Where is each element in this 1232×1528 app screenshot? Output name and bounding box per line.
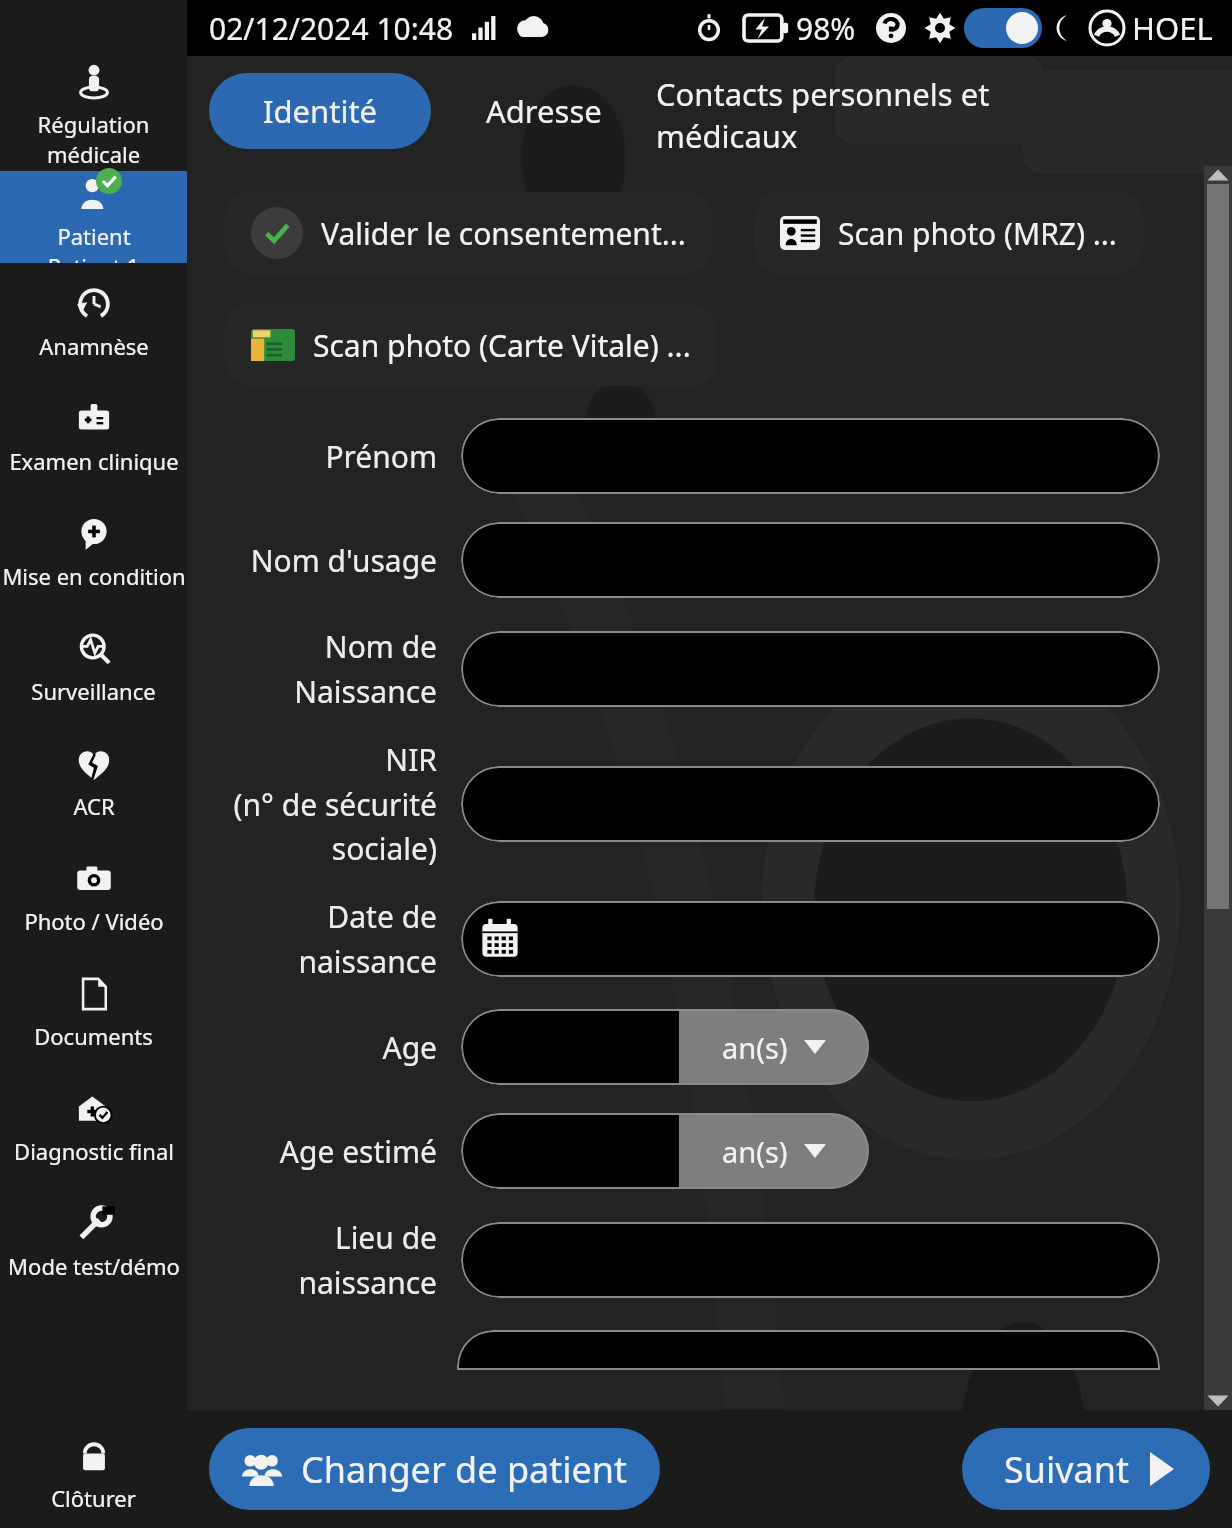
staticText: Régulation médicale <box>0 109 187 169</box>
staticText: Changer de patient <box>301 1445 628 1494</box>
staticText: an(s) <box>722 1132 788 1171</box>
button[interactable] <box>461 522 1160 598</box>
button[interactable]: Valider le consentement... <box>225 192 712 274</box>
button[interactable] <box>461 766 1160 842</box>
button[interactable]: an(s) <box>679 1009 869 1085</box>
staticText: Valider le consentement... <box>321 213 686 254</box>
button[interactable] <box>457 1330 1160 1370</box>
staticText: Lieu de naissance <box>225 1217 437 1302</box>
button[interactable]: Anamnèse <box>0 263 187 378</box>
staticText: HOEL <box>1132 7 1213 49</box>
button[interactable] <box>461 631 1160 707</box>
button[interactable]: Photo / Vidéo <box>0 838 187 953</box>
staticText: 02/12/2024 10:48 <box>209 8 454 49</box>
button[interactable]: Documents <box>0 953 187 1068</box>
staticText: Identité <box>263 90 378 132</box>
staticText: Date de naissance <box>225 896 437 981</box>
button[interactable]: Scan photo (Carte Vitale) ... <box>225 304 717 386</box>
button[interactable]: Mise en condition <box>0 493 187 608</box>
staticText: Suivant <box>1004 1445 1130 1494</box>
staticText: Examen clinique <box>9 446 179 476</box>
staticText: Mise en condition <box>2 561 186 591</box>
staticText: Nom d'usage <box>225 540 437 581</box>
staticText: Anamnèse <box>39 331 149 361</box>
other: Paramètres <box>924 12 956 44</box>
staticText: Surveillance <box>31 676 156 706</box>
staticText: Contacts personnels et médicaux <box>656 73 1136 149</box>
staticText: an(s) <box>722 1028 788 1067</box>
button[interactable]: Contacts personnels et médicaux <box>656 73 1136 149</box>
button[interactable]: Suivant <box>962 1428 1210 1510</box>
other: Timer <box>696 15 722 41</box>
staticText: Age estimé <box>225 1131 437 1172</box>
staticText: Scan photo (Carte Vitale) ... <box>313 325 691 366</box>
button[interactable] <box>461 1113 679 1189</box>
button[interactable]: Identité <box>209 73 431 149</box>
button[interactable]: Mode sombre <box>964 8 1042 48</box>
staticText: ACR <box>73 791 115 821</box>
button[interactable]: an(s) <box>679 1113 869 1189</box>
staticText: Photo / Vidéo <box>24 906 164 936</box>
staticText: Prénom <box>225 436 437 477</box>
other: Aide <box>876 13 906 43</box>
button[interactable]: Changer de patient <box>209 1428 660 1510</box>
staticText: Scan photo (MRZ) ... <box>838 213 1117 254</box>
button[interactable]: Régulation médicale <box>0 56 187 171</box>
button[interactable]: Examen clinique <box>0 378 187 493</box>
staticText: Nom de Naissance <box>225 626 437 711</box>
button[interactable] <box>461 1222 1160 1298</box>
button[interactable]: ACR <box>0 723 187 838</box>
button[interactable]: Surveillance <box>0 608 187 723</box>
button[interactable]: Mode test/démo <box>0 1183 187 1298</box>
staticText: Adresse <box>486 90 602 132</box>
button[interactable] <box>461 901 1160 977</box>
button[interactable]: Clôturer <box>0 1418 187 1528</box>
button[interactable]: Patient <box>0 171 187 263</box>
staticText: Patient <box>57 221 131 251</box>
staticText: Mode test/démo <box>8 1251 180 1281</box>
button[interactable]: Adresse <box>431 73 656 149</box>
staticText: Diagnostic final <box>14 1136 174 1166</box>
staticText: 98% <box>796 8 856 49</box>
button[interactable]: HOEL <box>1090 7 1213 49</box>
staticText: NIR (n° de sécurité sociale) <box>225 739 437 868</box>
staticText: Documents <box>34 1021 153 1051</box>
button[interactable]: Diagnostic final <box>0 1068 187 1183</box>
button[interactable] <box>461 418 1160 494</box>
staticText: Clôturer <box>51 1483 136 1513</box>
staticText: Age <box>225 1027 437 1068</box>
button[interactable] <box>461 1009 679 1085</box>
staticText: Patient 1 (anonyme) <box>0 251 187 263</box>
button[interactable]: Scan photo (MRZ) ... <box>754 192 1143 274</box>
